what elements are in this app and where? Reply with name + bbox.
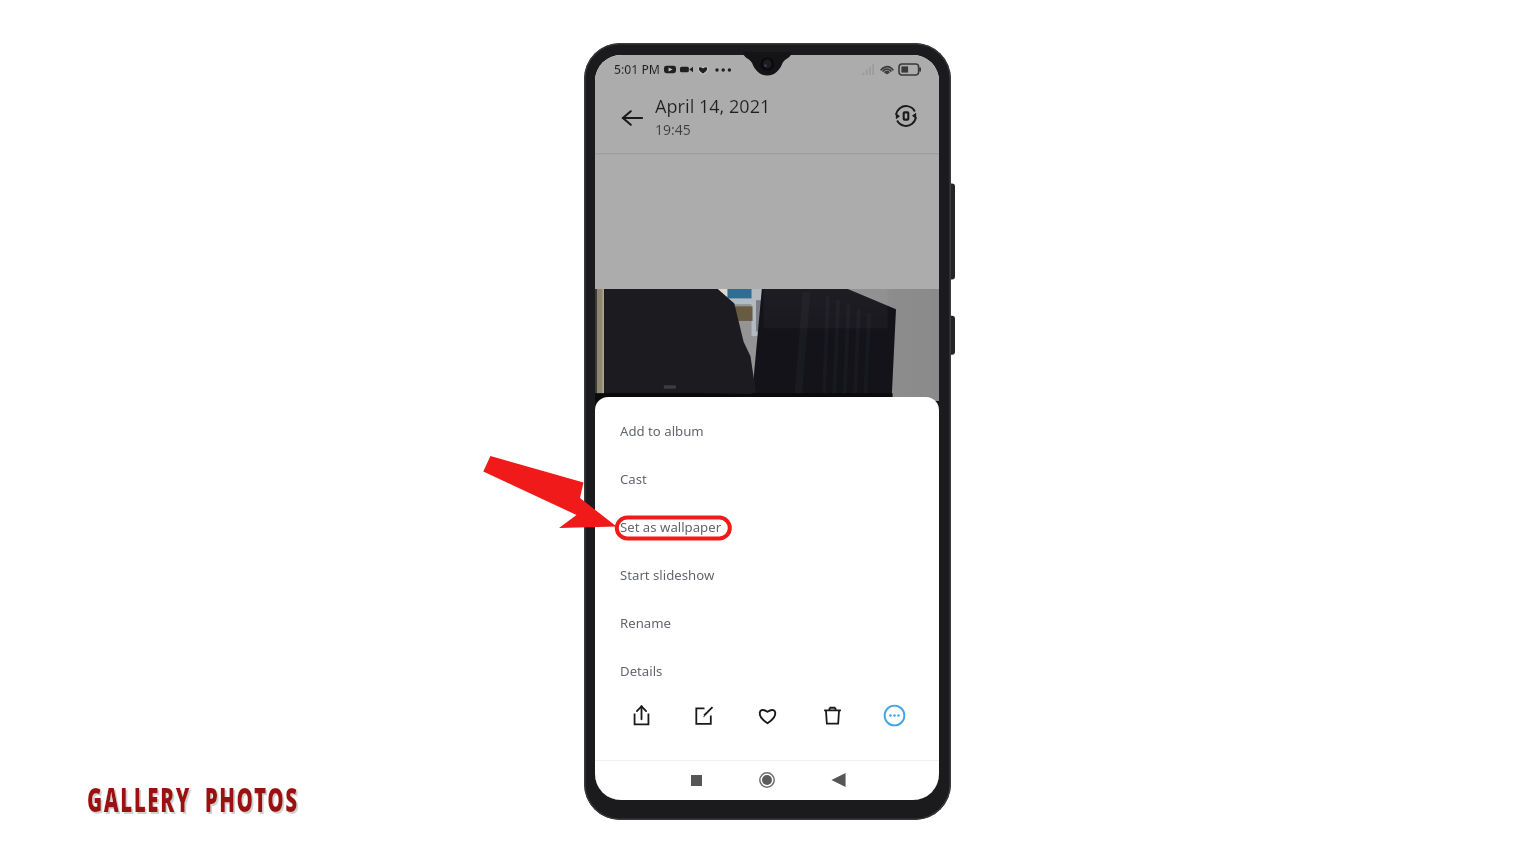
staticText: 19:45: [655, 120, 691, 139]
staticText: Rename: [620, 614, 671, 632]
button[interactable]: Add to album: [595, 407, 939, 455]
button[interactable]: Cast: [595, 455, 939, 503]
staticText: Cast: [620, 470, 647, 488]
staticText: 5:01 PM: [614, 61, 661, 78]
button[interactable]: Rename: [595, 599, 939, 647]
button[interactable]: Set as wallpaper: [595, 503, 939, 551]
button[interactable]: Favourite: [744, 690, 790, 740]
button[interactable]: More options: [871, 690, 917, 740]
button[interactable]: Home: [745, 760, 789, 800]
staticText: Start slideshow: [620, 566, 715, 584]
button[interactable]: Share: [618, 690, 664, 740]
button[interactable]: Auto rotate: [889, 99, 923, 133]
button[interactable]: Start slideshow: [595, 551, 939, 599]
button[interactable]: Recent apps: [674, 760, 718, 800]
staticText: April 14, 2021: [655, 94, 771, 119]
staticText: GALLERY PHOTOS: [89, 778, 301, 824]
staticText: Set as wallpaper: [620, 518, 722, 536]
button[interactable]: Back: [816, 760, 860, 800]
staticText: Add to album: [620, 422, 704, 440]
staticText: GALLERY PHOTOS: [87, 776, 299, 823]
button[interactable]: Back: [615, 101, 649, 135]
button[interactable]: Delete: [809, 690, 855, 740]
button[interactable]: Edit: [681, 690, 727, 740]
staticText: Details: [620, 662, 663, 680]
button[interactable]: Details: [595, 647, 939, 695]
